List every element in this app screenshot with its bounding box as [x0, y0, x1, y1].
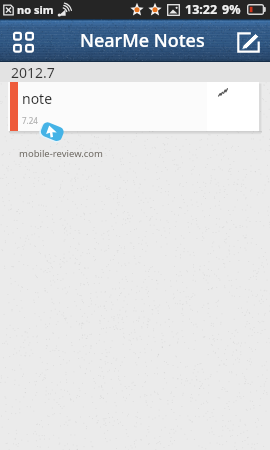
button[interactable]: Grid view	[0, 19, 46, 62]
staticText: note	[22, 89, 53, 108]
staticText: 13:22	[185, 1, 218, 18]
staticText: 7.24	[22, 115, 38, 126]
button[interactable]: note	[8, 82, 259, 131]
staticText: 9%	[222, 1, 241, 18]
staticText: no sim	[17, 2, 54, 17]
button[interactable]: New note	[230, 19, 270, 62]
staticText: mobile-review.com	[19, 147, 103, 160]
staticText: 2012.7	[11, 63, 55, 82]
staticText: NearMe Notes	[80, 28, 205, 53]
